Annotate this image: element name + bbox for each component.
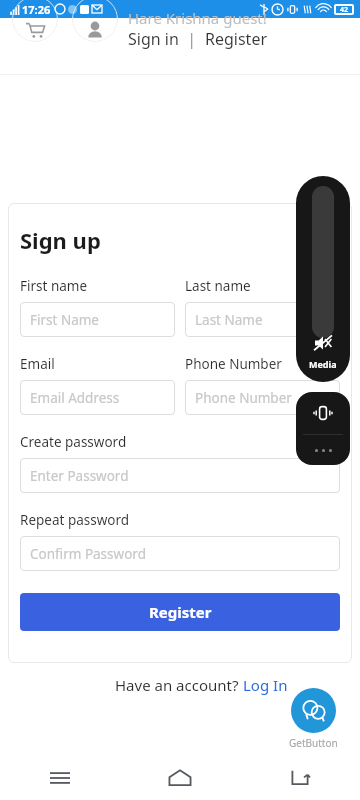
button[interactable]: Register [205, 28, 268, 50]
button[interactable]: Home [120, 756, 240, 800]
staticText: Confirm Password [30, 545, 146, 563]
button[interactable]: Back [240, 756, 360, 800]
staticText: 17:26 [22, 2, 51, 17]
staticText: First name [20, 277, 88, 295]
staticText: Last Name [195, 311, 263, 329]
staticText: Last name [185, 277, 251, 295]
button[interactable]: Phone Number [185, 380, 340, 415]
button[interactable]: Chat [291, 688, 336, 733]
staticText: Log In [243, 675, 288, 695]
staticText: Email [20, 355, 55, 373]
staticText: | [179, 28, 205, 50]
staticText: Media [309, 358, 337, 370]
staticText: Phone Number [185, 355, 282, 373]
staticText: Register [149, 602, 212, 622]
staticText: Hare Krishna guest! [128, 8, 267, 28]
button[interactable]: Sign in [128, 28, 179, 50]
button[interactable]: Enter Password [20, 458, 340, 493]
staticText: Repeat password [20, 511, 130, 529]
staticText: Enter Password [30, 467, 129, 485]
staticText: Email Address [30, 389, 120, 407]
staticText: Create password [20, 433, 127, 451]
staticText: First Name [30, 311, 99, 329]
staticText: Have an account? [115, 675, 243, 695]
staticText: Register [205, 28, 268, 50]
button[interactable]: Account [72, 0, 118, 42]
button[interactable]: First Name [20, 302, 175, 337]
staticText: 42 [340, 5, 349, 15]
button[interactable]: Log In [243, 675, 288, 695]
staticText: Sign up [20, 225, 101, 255]
button[interactable]: Register [20, 593, 340, 631]
button[interactable]: Vibrate [296, 392, 350, 434]
staticText: Phone Number [195, 389, 292, 407]
button[interactable]: Confirm Password [20, 536, 340, 571]
button[interactable]: Last Name [185, 302, 340, 337]
button[interactable]: More settings [296, 435, 350, 465]
button[interactable]: Cart [12, 0, 58, 42]
button[interactable]: Mute media [311, 331, 335, 355]
staticText: GetButton [289, 736, 338, 750]
button[interactable]: Recent apps [0, 756, 120, 800]
staticText: Sign in [128, 28, 179, 50]
button[interactable]: Email Address [20, 380, 175, 415]
